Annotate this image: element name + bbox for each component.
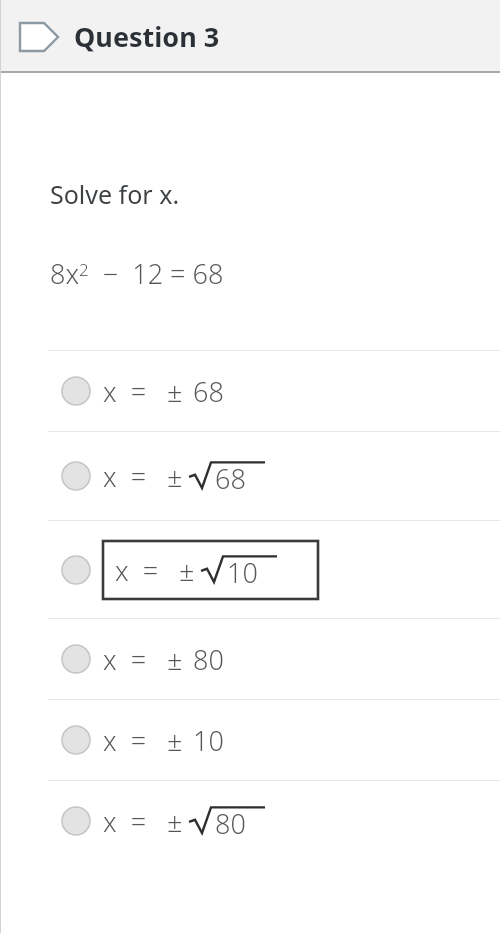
staticText: Question 3 <box>74 18 220 55</box>
staticText: x = ± <box>103 803 183 840</box>
staticText: 8x2 − 12 = 68 <box>50 255 224 292</box>
staticText: 68 <box>215 460 246 497</box>
staticText: 80 <box>215 805 246 842</box>
button[interactable]: x = ± <box>0 521 500 618</box>
button[interactable]: x = ± <box>0 619 500 699</box>
staticText: 68 <box>193 373 224 410</box>
button[interactable]: Question marker <box>18 18 62 56</box>
button[interactable]: x = ± <box>0 700 500 780</box>
staticText: x = ± <box>103 641 183 678</box>
staticText: 10 <box>193 722 224 759</box>
staticText: x = ± <box>103 373 183 410</box>
staticText: 80 <box>193 641 224 678</box>
staticText: Solve for x. <box>50 177 180 211</box>
button[interactable]: x = ± <box>0 781 500 861</box>
staticText: x = ± <box>115 552 195 589</box>
button[interactable]: x = ± <box>0 351 500 431</box>
button[interactable]: x = ± <box>0 432 500 520</box>
staticText: 10 <box>227 554 258 591</box>
staticText: x = ± <box>103 722 183 759</box>
staticText: x = ± <box>103 458 183 495</box>
